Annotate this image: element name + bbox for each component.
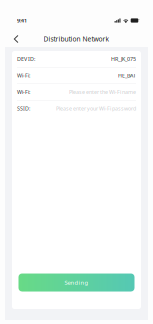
button[interactable]: Back [7, 31, 24, 47]
staticText: 9:41 [17, 17, 27, 24]
staticText: DEV ID: [17, 55, 35, 63]
staticText: HE_BAT [118, 72, 136, 79]
staticText: Please enter the Wi-Fi name [69, 88, 136, 96]
staticText: Distribution Network [43, 35, 109, 43]
staticText: Wi-Fi: [17, 72, 30, 79]
staticText: Wi-Fi: [17, 88, 30, 96]
staticText: HR_JK_075 [111, 55, 136, 63]
staticText: Sending [64, 278, 88, 286]
button[interactable]: Sending [18, 273, 134, 291]
staticText: SSID: [17, 105, 30, 112]
staticText: Please enter your Wi-Fi password [56, 105, 136, 112]
